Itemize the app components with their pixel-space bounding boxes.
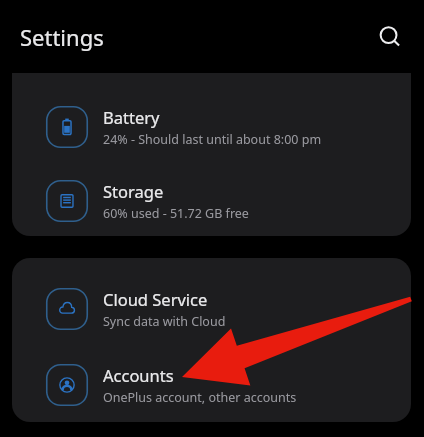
staticText: Sync data with Cloud — [103, 313, 226, 330]
staticText: 24% - Should last until about 8:00 pm — [103, 131, 322, 148]
staticText: Settings — [20, 22, 104, 52]
staticText: Storage — [103, 180, 164, 202]
button[interactable]: Storage — [12, 166, 411, 236]
staticText: OnePlus account, other accounts — [103, 389, 297, 406]
button[interactable]: Cloud Service — [12, 270, 411, 348]
button[interactable]: Battery — [12, 88, 411, 166]
staticText: Cloud Service — [103, 288, 208, 310]
button[interactable]: Search — [370, 17, 410, 57]
button[interactable]: Accounts — [12, 348, 411, 422]
staticText: 60% used - 51.72 GB free — [103, 205, 249, 222]
staticText: Accounts — [103, 364, 174, 386]
staticText: Battery — [103, 106, 160, 128]
